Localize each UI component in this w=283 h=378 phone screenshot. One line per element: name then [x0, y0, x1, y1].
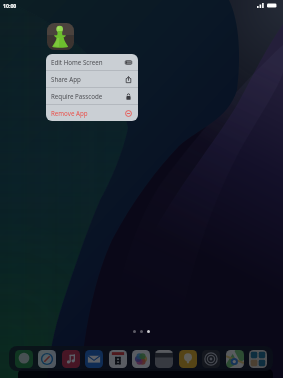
button[interactable]: Shortcuts — [249, 350, 267, 368]
staticText: Edit Home Screen — [51, 58, 103, 66]
button[interactable]: Edit Home Screen — [46, 54, 138, 70]
button[interactable]: Music — [62, 350, 80, 368]
button[interactable]: Tips — [179, 350, 197, 368]
button[interactable]: Require Passcode — [46, 88, 138, 104]
staticText: 10:00 — [3, 2, 17, 9]
button[interactable]: Files — [155, 350, 173, 368]
staticText: Require Passcode — [51, 92, 103, 100]
staticText: Share App — [51, 75, 81, 83]
button[interactable]: Mail — [85, 350, 103, 368]
button[interactable]: Photos — [132, 350, 150, 368]
button[interactable]: Safari — [38, 350, 56, 368]
button[interactable]: Maps — [226, 350, 244, 368]
button[interactable]: Chess app — [47, 23, 74, 50]
button[interactable]: Remove App — [46, 105, 138, 121]
button[interactable]: Messages — [15, 350, 33, 368]
button[interactable]: Calendar — [109, 350, 127, 368]
staticText: Remove App — [51, 109, 88, 117]
button[interactable]: Podcasts — [202, 350, 220, 368]
button[interactable]: Share App — [46, 71, 138, 87]
